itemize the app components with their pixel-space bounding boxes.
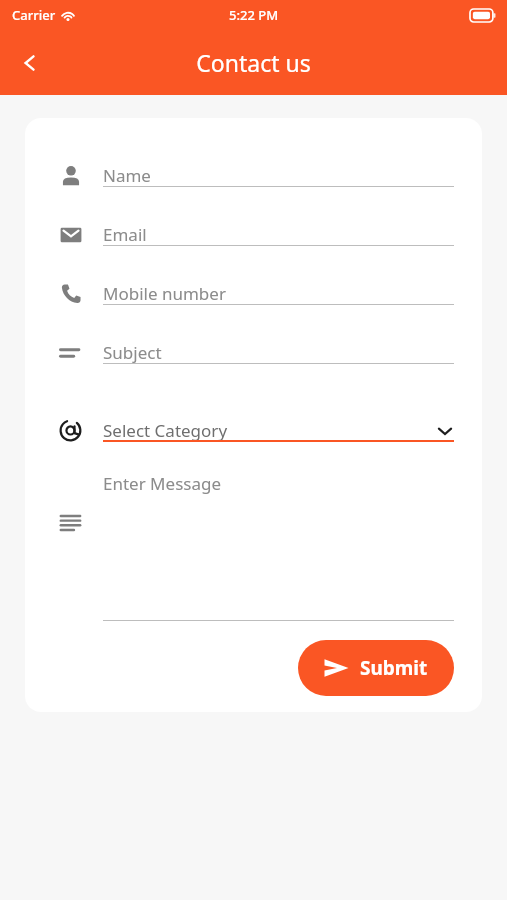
staticText: Submit — [360, 655, 428, 681]
button[interactable]: Name — [25, 146, 482, 205]
staticText: Select Category — [103, 419, 228, 442]
button[interactable]: Submit — [298, 640, 454, 696]
button[interactable]: Mobile number — [25, 264, 482, 323]
button[interactable]: Back — [8, 41, 52, 85]
staticText: Email — [103, 223, 147, 246]
button[interactable]: Email — [25, 205, 482, 264]
button[interactable]: Enter Message — [25, 460, 482, 621]
staticText: Contact us — [196, 47, 311, 78]
staticText: Name — [103, 164, 151, 187]
staticText: 5:22 PM — [229, 6, 279, 24]
staticText: Enter Message — [103, 472, 221, 495]
staticText: Mobile number — [103, 282, 226, 305]
staticText: Subject — [103, 341, 162, 364]
button[interactable]: Subject — [25, 323, 482, 382]
button[interactable]: Select Category — [25, 401, 482, 460]
staticText: Carrier — [12, 6, 56, 24]
